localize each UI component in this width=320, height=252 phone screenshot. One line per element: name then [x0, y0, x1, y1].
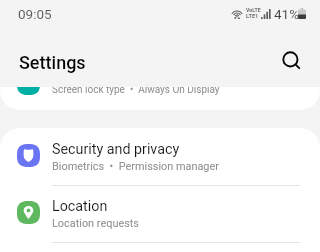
staticText: Settings	[19, 52, 86, 73]
staticText: Security and privacy	[52, 141, 180, 158]
button[interactable]: Security and privacy	[0, 128, 320, 186]
staticText: 41%	[274, 6, 300, 22]
button[interactable]: Search	[276, 45, 308, 77]
staticText: LTE1	[246, 13, 259, 20]
staticText: Screen lock type • Always On Display	[52, 87, 220, 96]
staticText: Biometrics • Permission manager	[52, 160, 219, 173]
staticText: VoLTE	[246, 7, 261, 13]
button[interactable]: Screen lock type • Always On Display	[0, 87, 320, 110]
staticText: 09:05	[18, 6, 52, 22]
staticText: Location requests	[52, 217, 139, 230]
button[interactable]: Location	[0, 185, 320, 243]
staticText: Location	[52, 198, 108, 215]
